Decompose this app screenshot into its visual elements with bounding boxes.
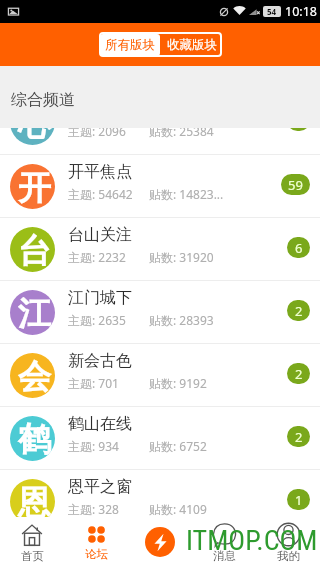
staticText: 2: [295, 428, 303, 446]
button[interactable]: 论坛: [64, 517, 128, 569]
button[interactable]: 会: [0, 344, 320, 406]
staticText: 贴数: 4109: [149, 501, 207, 517]
button[interactable]: 收藏版块: [161, 33, 222, 56]
staticText: 贴数: 28393: [149, 312, 214, 328]
staticText: 主题: 2635: [68, 312, 126, 328]
staticText: 1: [295, 491, 303, 509]
staticText: 主题: 328: [68, 501, 119, 517]
button[interactable]: 所有版块: [100, 34, 160, 56]
staticText: 2: [295, 365, 303, 383]
staticText: 新会古色: [68, 351, 132, 371]
staticText: 9: [295, 112, 303, 130]
staticText: 主题: 701: [68, 375, 119, 391]
button[interactable]: 消息: [192, 517, 256, 569]
staticText: 会: [18, 356, 51, 398]
staticText: 54: [267, 6, 277, 17]
staticText: 贴数: 9192: [149, 375, 207, 391]
staticText: 台: [18, 230, 51, 272]
staticText: 6: [295, 239, 303, 257]
staticText: 开平心情: [68, 99, 132, 119]
staticText: 主题: 2232: [68, 249, 126, 265]
staticText: 主题: 934: [68, 438, 119, 454]
staticText: 开平焦点: [68, 162, 132, 182]
staticText: 恩平之窗: [68, 477, 132, 497]
staticText: 贴数: 6752: [149, 438, 207, 454]
staticText: 59: [288, 176, 303, 194]
button[interactable]: 开: [0, 155, 320, 217]
button[interactable]: 台: [0, 218, 320, 280]
staticText: ITMOP.COM: [186, 524, 318, 557]
button[interactable]: 我的: [256, 517, 320, 569]
staticText: 综合频道: [11, 90, 75, 110]
staticText: 首页: [21, 549, 44, 563]
button[interactable]: 首页: [0, 517, 64, 569]
staticText: 鹤山在线: [68, 414, 132, 434]
staticText: 收藏版块: [167, 37, 217, 53]
staticText: 10:18: [285, 3, 317, 20]
staticText: 贴数: 14823...: [149, 186, 224, 202]
staticText: 所有版块: [105, 37, 155, 53]
staticText: 贴数: 31920: [149, 249, 214, 265]
button[interactable]: 发布: [145, 527, 175, 557]
button[interactable]: 心: [0, 91, 320, 154]
staticText: 江: [18, 293, 51, 335]
staticText: 2: [295, 302, 303, 320]
staticText: 论坛: [85, 547, 108, 561]
staticText: 心: [18, 103, 51, 145]
staticText: 开: [18, 167, 51, 209]
staticText: 我的: [277, 549, 300, 563]
staticText: 贴数: 25384: [149, 123, 214, 139]
staticText: 台山关注: [68, 225, 132, 245]
staticText: 主题: 2096: [68, 123, 126, 139]
button[interactable]: 江: [0, 281, 320, 343]
staticText: 恩: [18, 482, 51, 524]
staticText: 主题: 54642: [68, 186, 133, 202]
button[interactable]: 恩: [0, 470, 320, 532]
button[interactable]: 鹤: [0, 407, 320, 469]
staticText: 消息: [213, 549, 236, 563]
staticText: 江门城下: [68, 288, 132, 308]
staticText: 鹤: [18, 419, 51, 461]
